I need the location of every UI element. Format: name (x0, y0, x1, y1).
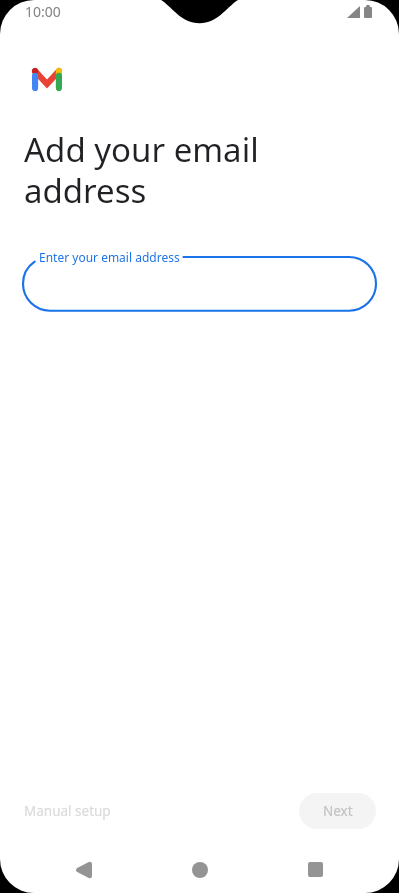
button[interactable]: Back (60, 846, 108, 893)
staticText: Next (323, 802, 353, 820)
staticText: Add your email address (24, 127, 259, 213)
button[interactable]: Recent apps (291, 846, 339, 893)
button[interactable]: Manual setup (14, 796, 121, 826)
staticText: Manual setup (24, 802, 111, 820)
staticText: Enter your email address (39, 249, 180, 265)
button[interactable]: Home (176, 846, 224, 893)
button[interactable]: Next (299, 793, 376, 829)
staticText: 10:00 (25, 2, 61, 21)
